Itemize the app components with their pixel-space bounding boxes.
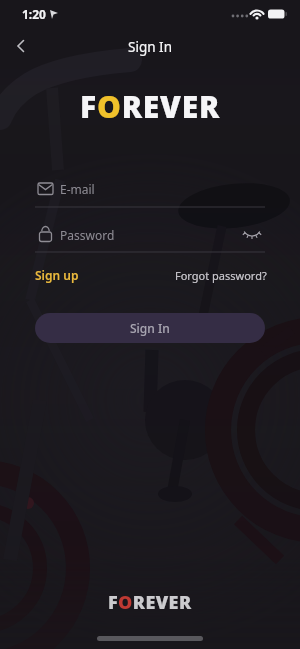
button[interactable] <box>8 34 40 58</box>
staticText: Sign In <box>130 320 170 336</box>
button[interactable]: Sign In <box>35 313 265 343</box>
button[interactable]: Sign up <box>35 267 79 283</box>
staticText: Sign up <box>35 267 79 283</box>
button[interactable]: Forgot password? <box>175 268 267 283</box>
staticText: Password <box>60 227 115 243</box>
staticText: Sign In <box>128 38 172 56</box>
staticText: FOREVER <box>80 86 221 120</box>
button[interactable] <box>238 222 266 244</box>
staticText: 1:20 <box>22 6 46 22</box>
staticText: Forgot password? <box>175 268 267 283</box>
staticText: FOREVER <box>108 590 192 610</box>
staticText: E-mail <box>60 181 95 197</box>
